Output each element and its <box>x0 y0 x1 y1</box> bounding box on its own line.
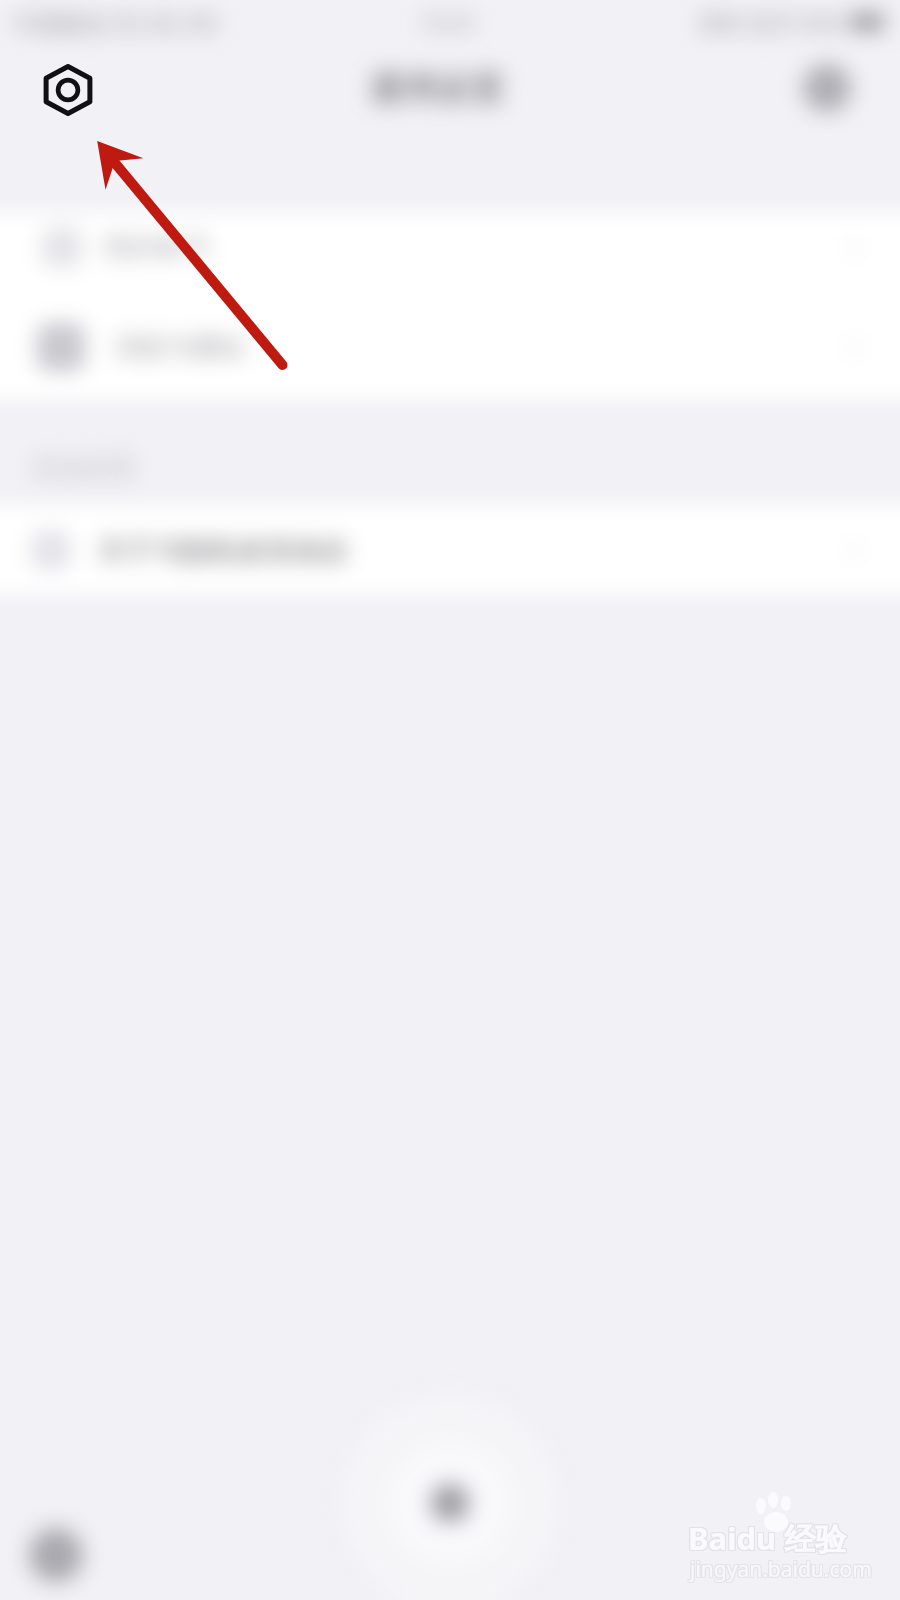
staticText: jingyan.baidu.com <box>690 1554 872 1583</box>
staticText: jingyan.baidu.com <box>690 1555 872 1584</box>
staticText: jingyan.baidu.com <box>689 1554 871 1583</box>
staticText: jingyan.baidu.com <box>691 1556 873 1585</box>
button[interactable]: Settings <box>32 54 104 126</box>
staticText: Baidu 经验 <box>688 1516 847 1558</box>
button[interactable]: Home <box>388 1441 512 1565</box>
staticText: 我的账号 <box>103 230 211 264</box>
staticText: 消息与通知 <box>114 331 244 364</box>
button[interactable]: 我的账号 <box>0 200 900 294</box>
staticText: Baidu 经验 <box>687 1517 846 1559</box>
staticText: jingyan.baidu.com <box>689 1556 871 1585</box>
staticText: Baidu 经验 <box>689 1516 848 1558</box>
staticText: 关于与隐私政策条款 <box>98 533 350 568</box>
staticText: Baidu 经验 <box>688 1518 847 1560</box>
staticText: Baidu 经验 <box>689 1517 848 1559</box>
staticText: jingyan.baidu.com <box>691 1555 873 1584</box>
staticText: Baidu 经验 <box>688 1517 847 1559</box>
button[interactable]: 消息与通知 <box>0 300 900 394</box>
staticText: Baidu 经验 <box>687 1516 846 1558</box>
button[interactable]: Back <box>29 1528 83 1582</box>
button[interactable]: Account <box>803 64 851 112</box>
staticText: 闹钟 蓝牙 84% <box>700 7 843 37</box>
button[interactable]: 关于与隐私政策条款 <box>0 505 900 595</box>
staticText: jingyan.baidu.com <box>691 1554 873 1583</box>
staticText: Baidu 经验 <box>687 1518 846 1560</box>
staticText: jingyan.baidu.com <box>689 1555 871 1584</box>
staticText: 通用设置 <box>369 67 505 110</box>
staticText: 中国移动 5G 4G HD <box>14 7 218 38</box>
staticText: jingyan.baidu.com <box>690 1556 872 1585</box>
staticText: Baidu 经验 <box>689 1518 848 1560</box>
